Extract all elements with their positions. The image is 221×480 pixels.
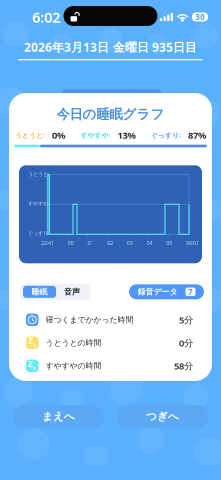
staticText: うとうと bbox=[28, 171, 48, 177]
staticText: 7 bbox=[188, 286, 193, 297]
staticText: すやすやの時間 bbox=[45, 361, 101, 371]
button[interactable]: Z bbox=[9, 331, 212, 354]
staticText: 30 bbox=[195, 12, 205, 22]
staticText: 58分 bbox=[174, 360, 193, 372]
staticText: 寝つくまでかかった時間 bbox=[45, 315, 133, 325]
button[interactable]: つぎへ bbox=[117, 405, 208, 428]
staticText: つぎへ bbox=[146, 410, 179, 423]
staticText: 今日の睡眠グラフ bbox=[56, 106, 164, 122]
button[interactable]: まえへ bbox=[13, 405, 104, 428]
staticText: すやすや: bbox=[80, 131, 110, 140]
staticText: 0分 bbox=[179, 337, 193, 349]
staticText: ぐっすり bbox=[28, 230, 48, 236]
staticText: まえへ bbox=[42, 410, 75, 423]
staticText: 13% bbox=[117, 129, 135, 141]
staticText: z bbox=[33, 341, 36, 348]
staticText: ぐっすり: bbox=[151, 131, 181, 140]
staticText: 04 bbox=[147, 239, 153, 246]
staticText: z bbox=[33, 364, 36, 371]
staticText: 0% bbox=[52, 129, 65, 141]
staticText: 6:02 bbox=[32, 7, 60, 27]
staticText: 03 bbox=[127, 239, 133, 246]
staticText: Z bbox=[28, 359, 33, 369]
staticText: 01 bbox=[87, 239, 93, 246]
button[interactable]: 睡眠 bbox=[23, 286, 56, 298]
staticText: 05 bbox=[166, 239, 172, 246]
staticText: Z bbox=[28, 336, 33, 346]
staticText: 音声 bbox=[64, 287, 80, 297]
staticText: 02 bbox=[107, 239, 113, 246]
button[interactable]: 寝つくまでかかった時間 bbox=[9, 308, 212, 331]
staticText: うとうと: bbox=[15, 131, 45, 140]
staticText: 00 bbox=[68, 239, 74, 246]
staticText: うとうとの時間 bbox=[45, 338, 101, 348]
staticText: 87% bbox=[188, 129, 206, 141]
staticText: すやすや bbox=[28, 200, 48, 207]
staticText: 22:41 bbox=[41, 239, 54, 246]
staticText: 5分 bbox=[179, 314, 193, 326]
staticText: 録音データ bbox=[137, 287, 177, 297]
staticText: 2026年3月13日 金曜日 935日目 bbox=[24, 39, 197, 55]
button[interactable]: Z bbox=[9, 354, 212, 377]
staticText: 06:01 bbox=[186, 239, 199, 246]
button[interactable]: 録音データ bbox=[129, 284, 204, 299]
staticText: 睡眠 bbox=[31, 287, 47, 297]
button[interactable]: 音声 bbox=[56, 286, 88, 298]
